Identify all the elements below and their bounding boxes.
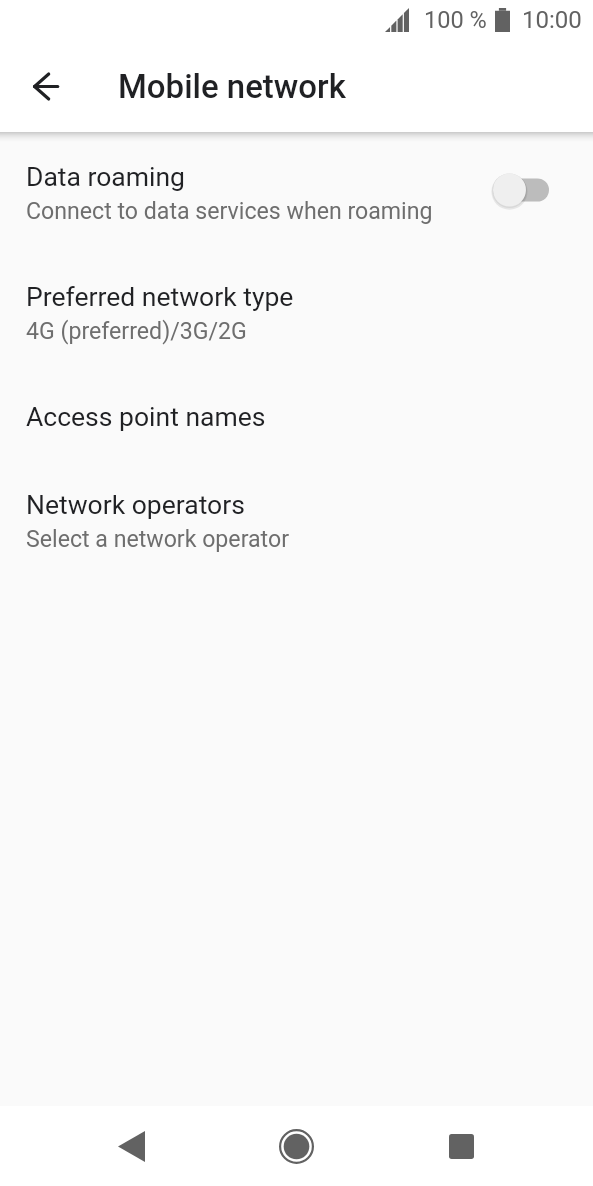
staticText: Data roaming xyxy=(26,161,186,192)
staticText: 4G (preferred)/3G/2G xyxy=(26,318,247,345)
button[interactable]: Access point names xyxy=(0,372,593,460)
staticText: 10:00 xyxy=(522,6,582,34)
button[interactable]: Home xyxy=(257,1107,336,1186)
staticText: Connect to data services when roaming xyxy=(26,198,433,225)
button[interactable]: Recent apps xyxy=(422,1107,501,1186)
staticText: Select a network operator xyxy=(26,526,289,553)
button[interactable]: Navigate up xyxy=(0,40,92,132)
button[interactable]: Back xyxy=(92,1107,171,1186)
button[interactable]: Data roaming xyxy=(493,166,549,214)
staticText: 100 % xyxy=(424,6,487,34)
button[interactable]: Network operators xyxy=(0,460,593,580)
button[interactable]: Preferred network type xyxy=(0,252,593,372)
staticText: Preferred network type xyxy=(26,281,294,312)
staticText: Network operators xyxy=(26,489,245,520)
button[interactable]: Data roaming xyxy=(0,132,593,252)
staticText: Access point names xyxy=(26,401,266,432)
staticText: Mobile network xyxy=(118,67,346,106)
